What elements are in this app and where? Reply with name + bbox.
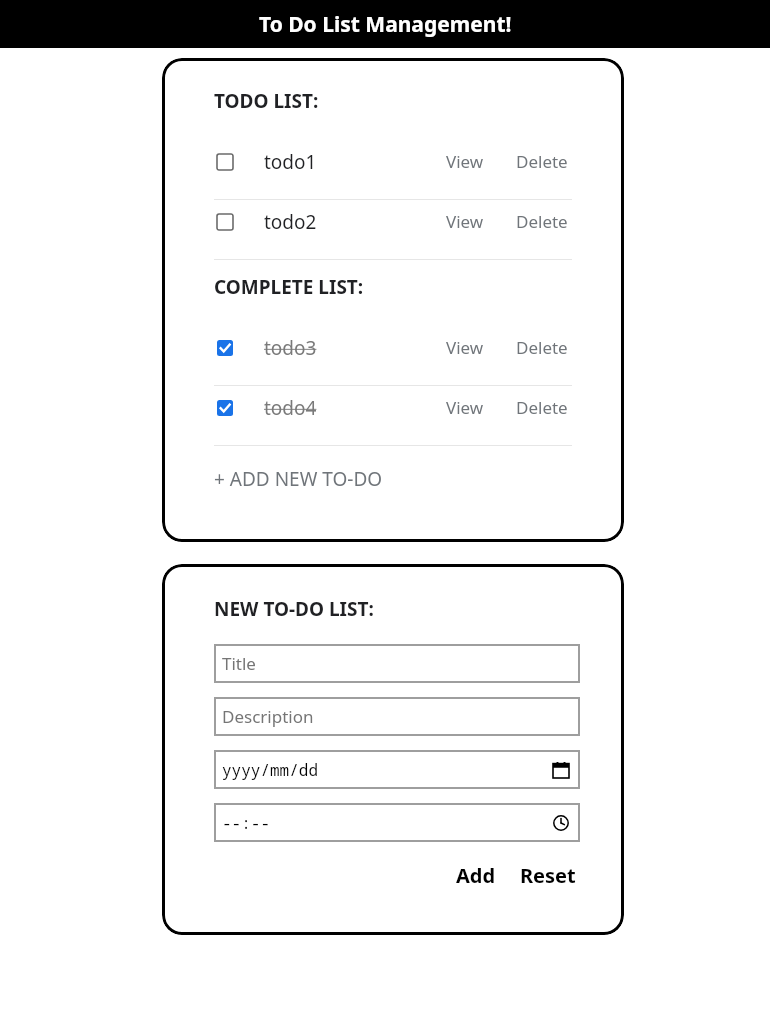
staticText: Title bbox=[222, 652, 256, 675]
button[interactable]: Description bbox=[214, 697, 580, 736]
button[interactable]: Completed bbox=[214, 397, 236, 419]
button[interactable]: Completed bbox=[162, 386, 624, 445]
button[interactable]: Open time picker bbox=[550, 812, 572, 834]
button[interactable]: Delete bbox=[512, 146, 572, 177]
staticText: Description bbox=[222, 705, 314, 728]
staticText: Delete bbox=[516, 150, 568, 173]
button[interactable]: yyyy/mm/dd bbox=[214, 750, 580, 789]
staticText: yyyy/mm/dd bbox=[222, 759, 319, 781]
button[interactable]: View bbox=[442, 332, 488, 363]
button[interactable]: Mark complete bbox=[214, 211, 236, 233]
staticText: todo4 bbox=[264, 395, 317, 421]
button[interactable]: Completed bbox=[214, 337, 236, 359]
button[interactable]: Delete bbox=[512, 206, 572, 237]
button[interactable]: Mark complete bbox=[162, 200, 624, 259]
button[interactable]: View bbox=[442, 146, 488, 177]
button[interactable]: Add bbox=[450, 858, 502, 893]
staticText: Delete bbox=[516, 336, 568, 359]
button[interactable]: Mark complete bbox=[162, 140, 624, 199]
staticText: todo3 bbox=[264, 335, 317, 361]
staticText: View bbox=[446, 210, 484, 233]
staticText: NEW TO-DO LIST: bbox=[214, 596, 374, 622]
button[interactable]: Open date picker bbox=[550, 759, 572, 781]
button[interactable]: Title bbox=[214, 644, 580, 683]
button[interactable]: Completed bbox=[162, 326, 624, 385]
button[interactable]: Reset bbox=[514, 858, 582, 893]
staticText: Add bbox=[456, 862, 496, 889]
staticText: View bbox=[446, 150, 484, 173]
button[interactable]: Mark complete bbox=[214, 151, 236, 173]
staticText: Delete bbox=[516, 210, 568, 233]
staticText: todo2 bbox=[264, 209, 317, 235]
button[interactable]: View bbox=[442, 392, 488, 423]
button[interactable]: + ADD NEW TO-DO bbox=[162, 462, 624, 496]
button[interactable]: --:-- bbox=[214, 803, 580, 842]
button[interactable]: Delete bbox=[512, 392, 572, 423]
staticText: To Do List Management! bbox=[259, 10, 512, 39]
staticText: todo1 bbox=[264, 149, 317, 175]
staticText: Reset bbox=[520, 862, 576, 889]
staticText: TODO LIST: bbox=[214, 88, 319, 114]
staticText: --:-- bbox=[222, 812, 271, 834]
staticText: COMPLETE LIST: bbox=[214, 274, 364, 300]
staticText: + ADD NEW TO-DO bbox=[214, 466, 383, 492]
staticText: View bbox=[446, 396, 484, 419]
button[interactable]: View bbox=[442, 206, 488, 237]
button[interactable]: Delete bbox=[512, 332, 572, 363]
staticText: View bbox=[446, 336, 484, 359]
staticText: Delete bbox=[516, 396, 568, 419]
